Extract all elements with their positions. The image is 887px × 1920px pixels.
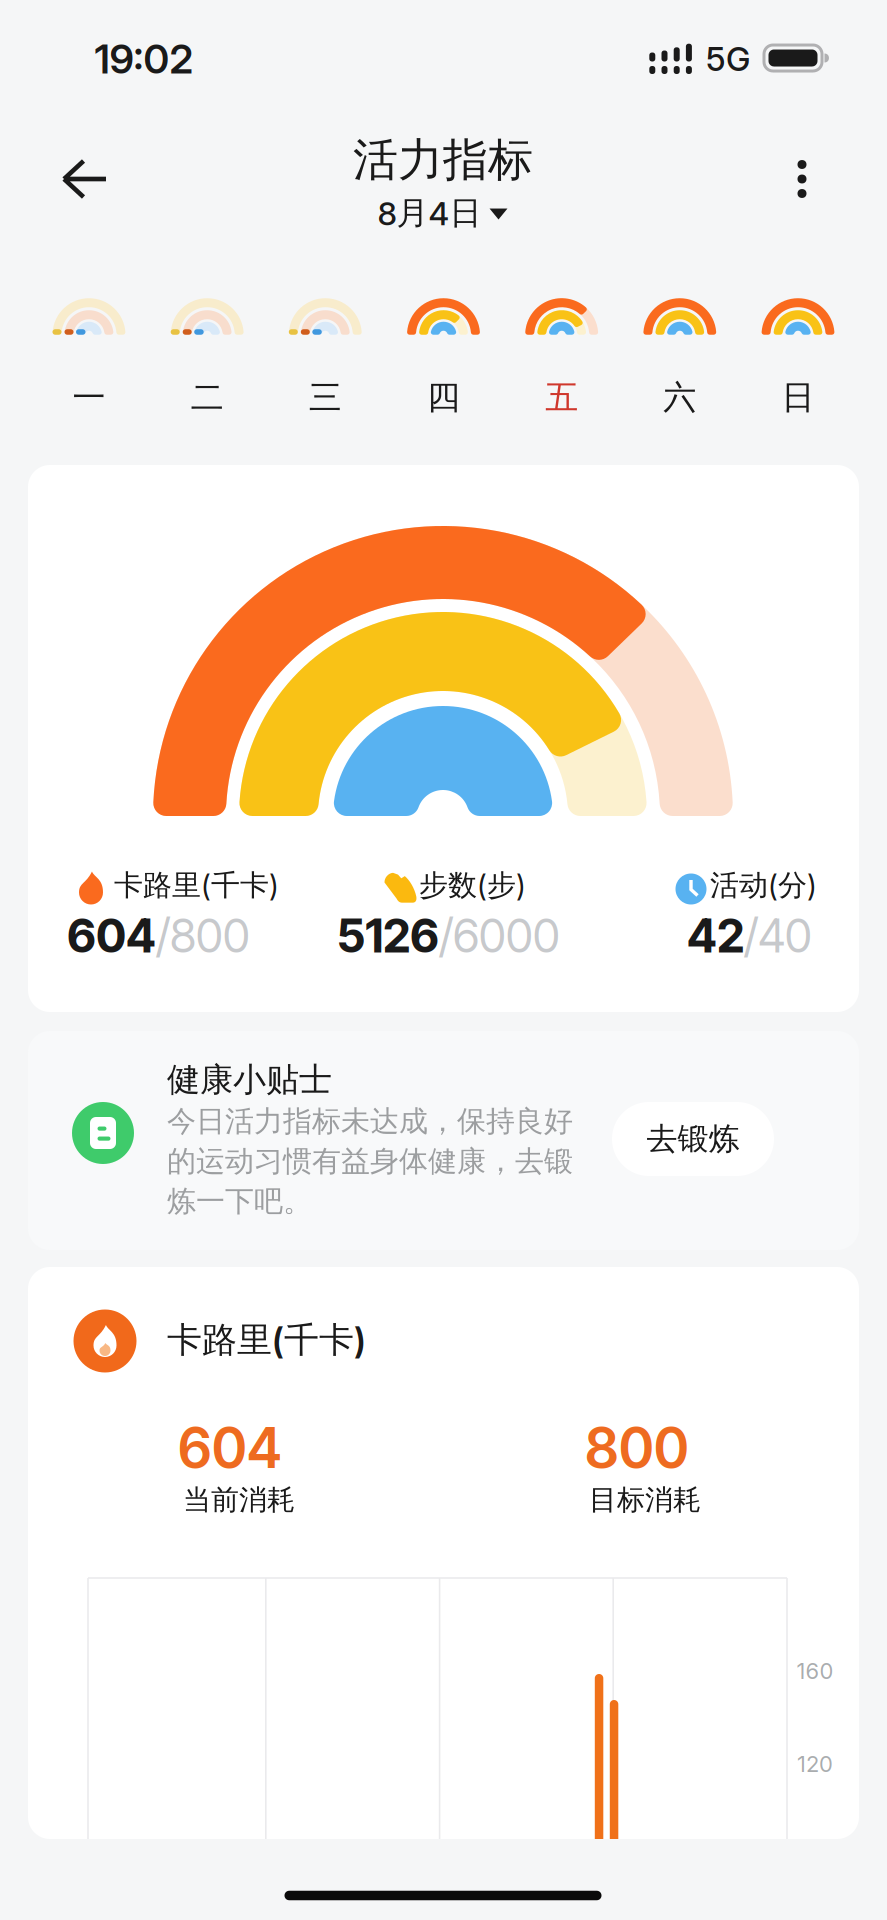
staticText: 42 — [687, 908, 744, 964]
staticText: 步数(步) — [419, 867, 526, 903]
staticText: 活力指标 — [353, 132, 533, 188]
button[interactable]: 二 — [167, 292, 247, 418]
staticText: /6000 — [439, 908, 560, 964]
button[interactable]: 日 — [758, 292, 838, 418]
button[interactable]: 一 — [49, 292, 129, 418]
button[interactable]: 四 — [403, 292, 483, 418]
staticText: 5G — [706, 39, 750, 79]
button[interactable]: 五 — [522, 292, 602, 418]
staticText: 五 — [545, 377, 578, 418]
staticText: 健康小贴士 — [167, 1059, 332, 1101]
staticText: /40 — [744, 908, 812, 964]
staticText: 去锻炼 — [646, 1119, 739, 1159]
staticText: 三 — [309, 377, 342, 418]
staticText: 604 — [67, 908, 156, 964]
button[interactable]: 去锻炼 — [612, 1102, 774, 1176]
staticText: 5126 — [337, 908, 439, 964]
staticText: 四 — [427, 377, 460, 418]
staticText: 800 — [585, 1415, 689, 1481]
staticText: 604 — [178, 1415, 282, 1481]
button[interactable]: 三 — [285, 292, 365, 418]
staticText: 二 — [191, 377, 224, 418]
button[interactable]: 8月4日 — [377, 193, 508, 233]
staticText: 的运动习惯有益身体健康，去锻 — [167, 1143, 573, 1179]
staticText: 160 — [796, 1658, 833, 1684]
staticText: /800 — [156, 908, 250, 964]
staticText: 日 — [781, 377, 814, 418]
staticText: 一 — [72, 377, 105, 418]
staticText: 19:02 — [94, 35, 193, 83]
staticText: 今日活力指标未达成，保持良好 — [167, 1103, 573, 1139]
staticText: 8月4日 — [377, 193, 481, 233]
staticText: 卡路里(千卡) — [167, 1318, 366, 1362]
staticText: 活动(分) — [710, 867, 817, 903]
staticText: 120 — [797, 1751, 833, 1777]
staticText: 炼一下吧。 — [167, 1183, 312, 1219]
staticText: 六 — [663, 377, 696, 418]
button[interactable] — [54, 149, 118, 209]
staticText: 目标消耗 — [589, 1482, 701, 1518]
button[interactable] — [782, 149, 822, 209]
staticText: 卡路里(千卡) — [114, 867, 279, 903]
button[interactable]: 六 — [640, 292, 720, 418]
staticText: 当前消耗 — [183, 1482, 295, 1518]
